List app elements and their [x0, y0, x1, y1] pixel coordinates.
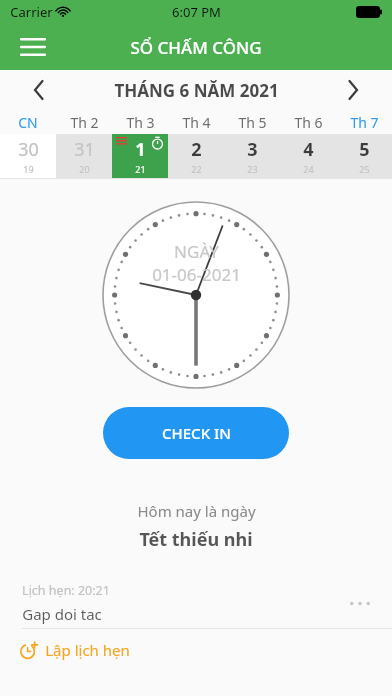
staticText: Gap doi tac	[22, 604, 102, 624]
staticText: 23	[247, 163, 258, 175]
staticText: 31	[74, 137, 95, 162]
button[interactable]: Next month	[336, 73, 370, 107]
button[interactable]: 3	[224, 134, 280, 178]
staticText: Carrier	[10, 3, 53, 21]
button[interactable]: 2	[168, 134, 224, 178]
staticText: Th 3	[126, 113, 155, 132]
staticText: 5	[359, 137, 370, 162]
staticText: 25	[359, 163, 370, 175]
staticText: Th 4	[182, 113, 211, 132]
staticText: 22	[191, 163, 202, 175]
staticText: 2	[191, 137, 202, 162]
staticText: Th 6	[294, 113, 323, 132]
button[interactable]: More options	[342, 585, 378, 621]
staticText: CN	[18, 113, 38, 132]
staticText: 24	[303, 163, 314, 175]
button[interactable]: 5	[336, 134, 392, 178]
staticText: NGÀY	[174, 240, 219, 263]
button[interactable]: Lịch hẹn: 20:21	[0, 578, 392, 628]
staticText: Th 2	[70, 113, 99, 132]
button[interactable]: 30	[0, 134, 56, 178]
staticText: SỔ CHẤM CÔNG	[130, 36, 262, 59]
staticText: Th 7	[350, 113, 379, 132]
button[interactable]: 4	[280, 134, 336, 178]
staticText: Tết thiếu nhi	[139, 527, 253, 552]
staticText: 4	[303, 137, 314, 162]
staticText: 19	[23, 163, 34, 175]
button[interactable]: 31	[56, 134, 112, 178]
staticText: 01-06-2021	[152, 263, 241, 286]
button[interactable]: Menu	[14, 28, 52, 66]
button[interactable]: Lập lịch hẹn	[0, 629, 392, 671]
staticText: 30	[18, 137, 39, 162]
button[interactable]: 1	[112, 134, 168, 178]
button[interactable]: CHECK IN	[103, 407, 289, 459]
staticText: THÁNG 6 NĂM 2021	[114, 79, 279, 102]
staticText: Lịch hẹn: 20:21	[22, 582, 110, 599]
staticText: Lập lịch hẹn	[45, 640, 130, 660]
staticText: Hôm nay là ngày	[137, 501, 256, 521]
staticText: 20	[79, 163, 90, 175]
button[interactable]: Previous month	[22, 73, 56, 107]
staticText: Th 5	[238, 113, 267, 132]
staticText: 21	[135, 163, 146, 175]
staticText: 6:07 PM	[172, 3, 221, 21]
staticText: 1	[135, 137, 146, 162]
staticText: 3	[247, 137, 258, 162]
staticText: CHECK IN	[162, 423, 231, 443]
